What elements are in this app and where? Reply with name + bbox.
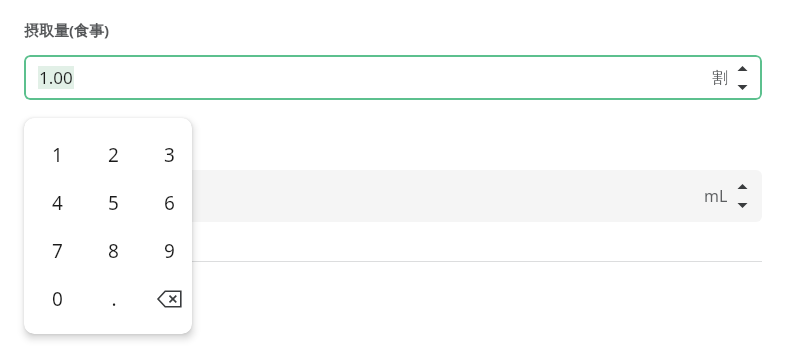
button[interactable]: 2 [91, 131, 136, 179]
staticText: 0 [52, 286, 63, 312]
staticText: 1.00 [39, 66, 73, 89]
staticText: 5 [108, 190, 119, 216]
button[interactable]: mL [24, 170, 762, 222]
button[interactable]: 1 [35, 131, 80, 179]
staticText: 1 [52, 142, 63, 168]
staticText: 6 [164, 190, 175, 216]
staticText: 2 [108, 142, 119, 168]
button[interactable]: 8 [91, 227, 136, 275]
staticText: 3 [164, 142, 175, 168]
staticText: 4 [52, 190, 63, 216]
staticText: mL [704, 185, 728, 207]
button[interactable]: . [91, 275, 136, 323]
button[interactable]: Increment or decrement value [737, 183, 748, 209]
staticText: 9 [164, 238, 175, 264]
button[interactable]: 0 [35, 275, 80, 323]
other: Backspace [158, 290, 182, 308]
staticText: 割 [712, 68, 728, 88]
staticText: 7 [52, 238, 63, 264]
button[interactable]: 7 [35, 227, 80, 275]
staticText: . [111, 286, 117, 312]
staticText: 摂取量(食事) [24, 20, 110, 40]
button[interactable]: 5 [91, 179, 136, 227]
button[interactable]: 9 [147, 227, 192, 275]
button[interactable]: 3 [147, 131, 192, 179]
button[interactable]: Increment or decrement value [737, 65, 748, 91]
button[interactable]: 4 [35, 179, 80, 227]
button[interactable]: 6 [147, 179, 192, 227]
staticText: 8 [108, 238, 119, 264]
button[interactable]: Backspace [147, 275, 192, 323]
button[interactable]: 1.00 [24, 55, 762, 100]
